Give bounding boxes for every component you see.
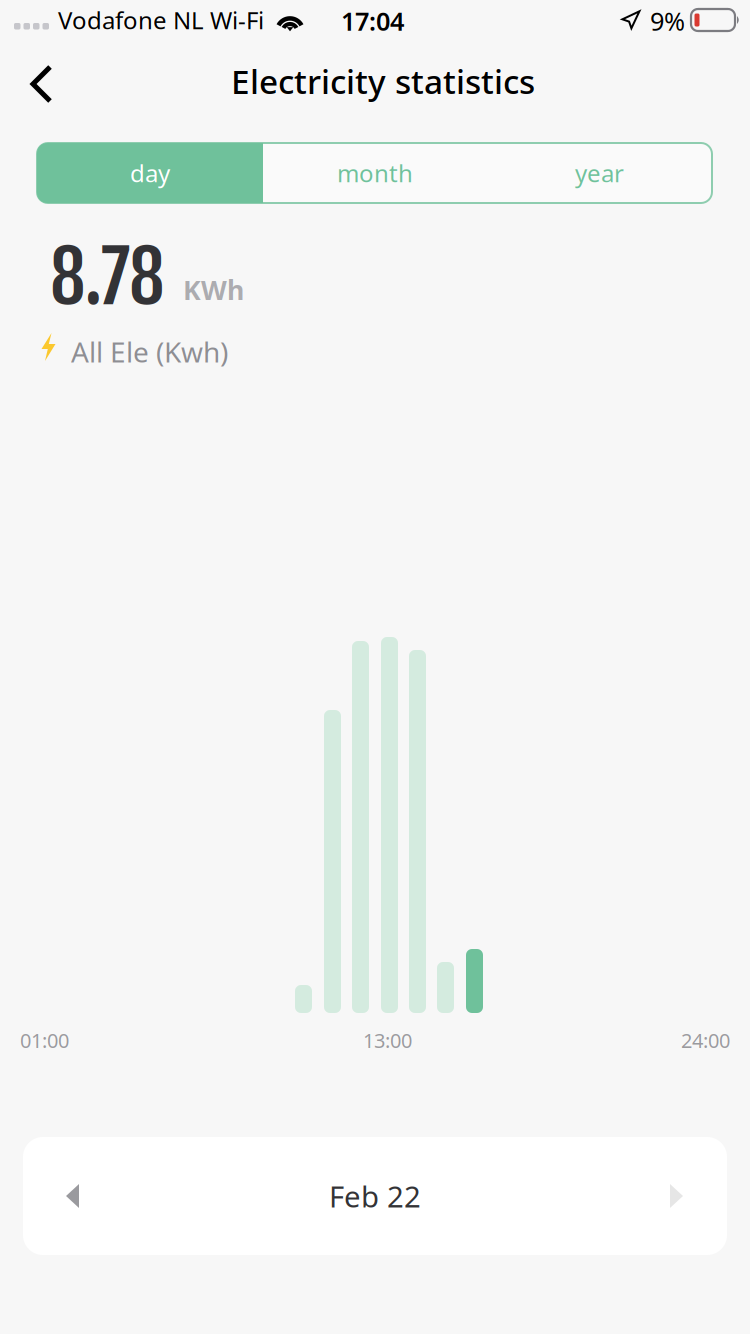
staticText: KWh: [183, 272, 244, 307]
button[interactable]: month: [263, 143, 487, 203]
staticText: day: [130, 157, 170, 189]
staticText: 13:00: [363, 1027, 412, 1054]
staticText: 24:00: [681, 1027, 730, 1054]
staticText: Electricity statistics: [231, 59, 535, 103]
staticText: 01:00: [20, 1027, 69, 1054]
staticText: year: [575, 157, 624, 189]
staticText: Vodafone NL Wi-Fi: [58, 4, 264, 36]
button[interactable]: Feb 22: [23, 1137, 727, 1255]
staticText: Feb 22: [329, 1176, 421, 1215]
staticText: 8.78: [50, 233, 165, 322]
button[interactable]: year: [487, 143, 712, 203]
staticText: 17:04: [341, 4, 404, 38]
button[interactable]: day: [37, 143, 263, 203]
staticText: All Ele (Kwh): [71, 333, 228, 370]
staticText: 9%: [650, 4, 685, 38]
staticText: month: [337, 157, 413, 189]
button[interactable]: Back: [12, 52, 84, 116]
